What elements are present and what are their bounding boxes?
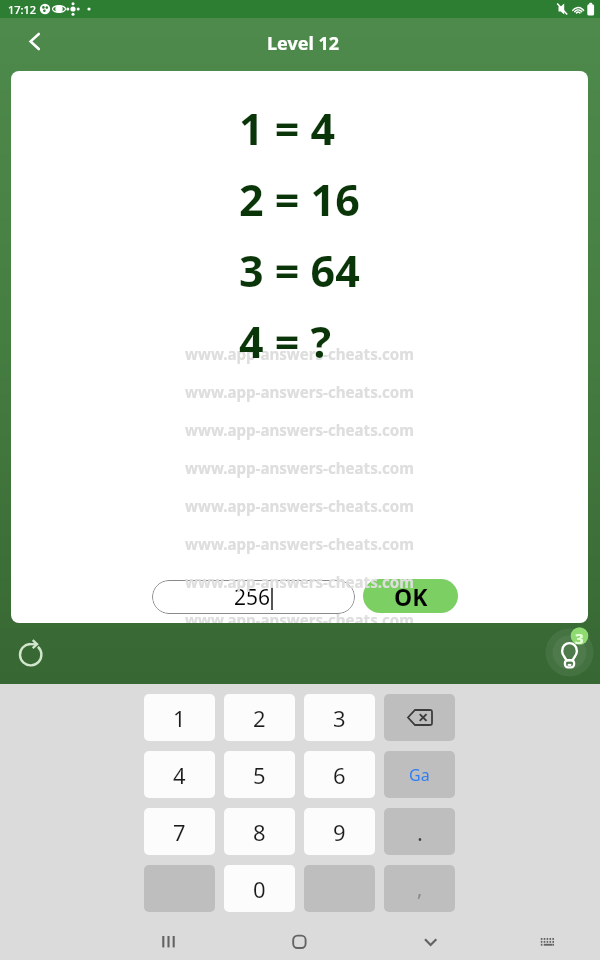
button[interactable] [384,694,455,741]
button[interactable]: Home [281,924,317,960]
button[interactable]: Recents [150,924,186,960]
staticText: 0 [253,874,266,904]
staticText: www.app-answers-cheats.com [185,420,414,440]
button[interactable]: Restart [7,631,55,679]
staticText: 17:12 [8,2,37,17]
button[interactable]: . [384,808,455,855]
button[interactable]: Switch keyboard [532,924,568,960]
button[interactable]: 3 [304,694,375,741]
staticText: 2 = 16 [239,170,360,241]
staticText: 5 [253,760,266,790]
button[interactable]: 1 [144,694,215,741]
staticText: Ga [409,764,430,786]
staticText: , [417,875,423,902]
staticText: www.app-answers-cheats.com [185,572,414,592]
button[interactable]: 0 [224,865,295,912]
button[interactable]: 6 [304,751,375,798]
staticText: OK [394,581,428,612]
button[interactable]: Hide keyboard [413,924,449,960]
button[interactable]: OK [363,579,458,613]
staticText: 8 [253,817,266,847]
staticText: . [417,817,423,847]
staticText: 9 [333,817,346,847]
staticText: www.app-answers-cheats.com [185,344,414,364]
staticText: 1 = 4 [239,99,336,170]
staticText: 256 [234,583,271,612]
button[interactable]: 256 [152,580,355,614]
button[interactable]: 7 [144,808,215,855]
staticText: www.app-answers-cheats.com [185,496,414,516]
button[interactable]: 4 [144,751,215,798]
staticText: www.app-answers-cheats.com [185,534,414,554]
staticText: 4 [173,760,186,790]
staticText: 2 [253,703,266,733]
button[interactable]: , [384,865,455,912]
staticText: 3 = 64 [239,241,360,312]
button[interactable]: Ga [384,751,455,798]
staticText: 6 [333,760,346,790]
button[interactable]: Hint [545,626,595,676]
button[interactable]: 8 [224,808,295,855]
button[interactable]: 2 [224,694,295,741]
staticText: www.app-answers-cheats.com [185,382,414,402]
button[interactable]: 5 [224,751,295,798]
staticText: 4 = ? [239,312,332,383]
staticText: 7 [173,817,186,847]
button[interactable]: 9 [304,808,375,855]
staticText: 3 [333,703,346,733]
staticText: 1 [173,703,186,733]
staticText: www.app-answers-cheats.com [185,610,414,623]
button[interactable]: Back [16,24,52,60]
staticText: www.app-answers-cheats.com [185,458,414,478]
staticText: Level 12 [267,31,340,56]
staticText: 3 [575,628,584,648]
